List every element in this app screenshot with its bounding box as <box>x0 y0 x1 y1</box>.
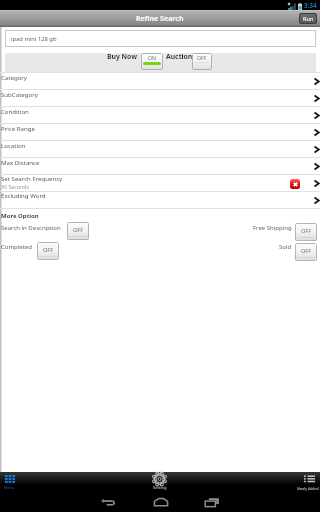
button[interactable]: OFF <box>295 223 317 241</box>
staticText: Newly Added <box>297 486 319 491</box>
staticText: Completed <box>1 243 32 251</box>
staticText: OFF <box>301 227 312 235</box>
staticText: Max Distance <box>1 158 40 166</box>
button[interactable]: SubCategory <box>0 89 320 106</box>
button[interactable]: Clear search frequency <box>290 179 300 189</box>
staticText: OFF <box>197 54 207 61</box>
button[interactable]: OFF <box>67 222 89 240</box>
button[interactable]: OFF <box>37 242 59 260</box>
button[interactable]: Max Distance <box>0 157 320 174</box>
button[interactable]: Run <box>299 13 317 24</box>
staticText: 30 Seconds <box>1 183 30 190</box>
button[interactable]: Setting <box>149 472 171 492</box>
staticText: Auction <box>166 52 193 61</box>
staticText: Free Shipping <box>253 224 292 232</box>
button[interactable]: Condition <box>0 106 320 123</box>
staticText: ON <box>148 54 156 61</box>
staticText: SubCategory <box>1 90 38 98</box>
staticText: Set Search Frequency <box>1 174 63 182</box>
button[interactable]: Price Range <box>0 123 320 140</box>
staticText: OFF <box>73 226 84 234</box>
staticText: Excluding Word <box>1 191 46 199</box>
button[interactable]: Excluding Word <box>0 191 320 208</box>
staticText: Search in Description <box>1 224 61 232</box>
button[interactable]: Recent apps <box>199 493 225 511</box>
staticText: Price Range <box>1 124 35 132</box>
button[interactable]: OFF <box>295 243 317 261</box>
button[interactable]: Category <box>0 72 320 89</box>
staticText: ipad mini 128 gb <box>11 35 57 43</box>
button[interactable]: Home <box>148 493 174 511</box>
button[interactable]: Back <box>95 493 121 511</box>
button[interactable]: Location <box>0 140 320 157</box>
staticText: Run <box>303 15 314 23</box>
staticText: Category <box>1 73 27 81</box>
button[interactable]: ON <box>141 53 163 70</box>
staticText: Refine Search <box>136 14 184 24</box>
staticText: Sold <box>279 243 292 251</box>
button[interactable]: Set Search Frequency <box>0 174 320 191</box>
staticText: Buy Now <box>107 52 138 61</box>
staticText: Condition <box>1 107 29 115</box>
staticText: Location <box>1 141 26 149</box>
staticText: OFF <box>301 247 312 255</box>
staticText: 3:34 <box>304 1 317 10</box>
button[interactable]: ipad mini 128 gb <box>5 30 316 47</box>
staticText: More Option <box>1 212 39 220</box>
button[interactable]: Menu <box>0 472 21 492</box>
staticText: Menu <box>4 485 15 490</box>
staticText: Setting <box>153 485 167 491</box>
button[interactable]: OFF <box>192 53 212 70</box>
staticText: OFF <box>43 246 54 254</box>
button[interactable]: Newly Added <box>296 472 320 492</box>
